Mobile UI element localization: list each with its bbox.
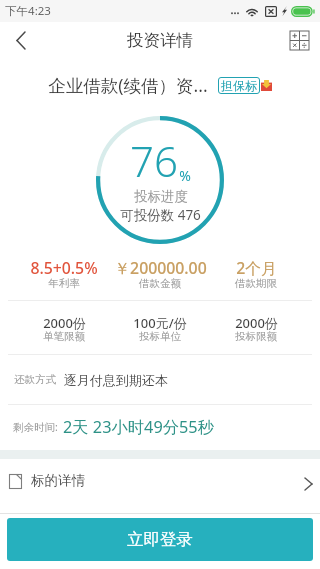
staticText: 2000份: [43, 314, 86, 332]
staticText: 投标限额: [235, 330, 277, 343]
staticText: 担保标: [221, 78, 257, 93]
staticText: 企业借款(续借）资...: [48, 73, 208, 97]
staticText: 标的详情: [31, 472, 85, 489]
staticText: 下午4:23: [5, 3, 51, 19]
button[interactable]: 标的详情: [0, 459, 320, 502]
staticText: %: [179, 166, 191, 185]
staticText: 投标单位: [139, 330, 181, 343]
staticText: 2000份: [235, 314, 278, 332]
staticText: 剩余时间:: [13, 420, 58, 434]
staticText: 投资详情: [127, 30, 193, 51]
staticText: ￥200000.00: [114, 257, 207, 279]
staticText: 借款期限: [235, 277, 277, 290]
staticText: 还款方式: [14, 373, 56, 386]
staticText: 立即登录: [127, 529, 193, 550]
staticText: 76: [130, 132, 178, 189]
staticText: 借款金额: [139, 277, 181, 290]
button[interactable]: Calculator: [278, 22, 320, 58]
staticText: 2个月: [236, 257, 277, 279]
staticText: 2天 23小时49分55秒: [63, 416, 214, 438]
staticText: 逐月付息到期还本: [64, 372, 168, 388]
staticText: 单笔限额: [43, 330, 85, 343]
button[interactable]: Back: [0, 22, 42, 58]
staticText: 年利率: [48, 277, 80, 290]
staticText: 可投份数 476: [120, 206, 201, 224]
staticText: 100元/份: [133, 314, 187, 332]
staticText: 8.5+0.5%: [30, 257, 98, 279]
button[interactable]: 立即登录: [7, 518, 313, 561]
staticText: 投标进度: [134, 188, 188, 205]
